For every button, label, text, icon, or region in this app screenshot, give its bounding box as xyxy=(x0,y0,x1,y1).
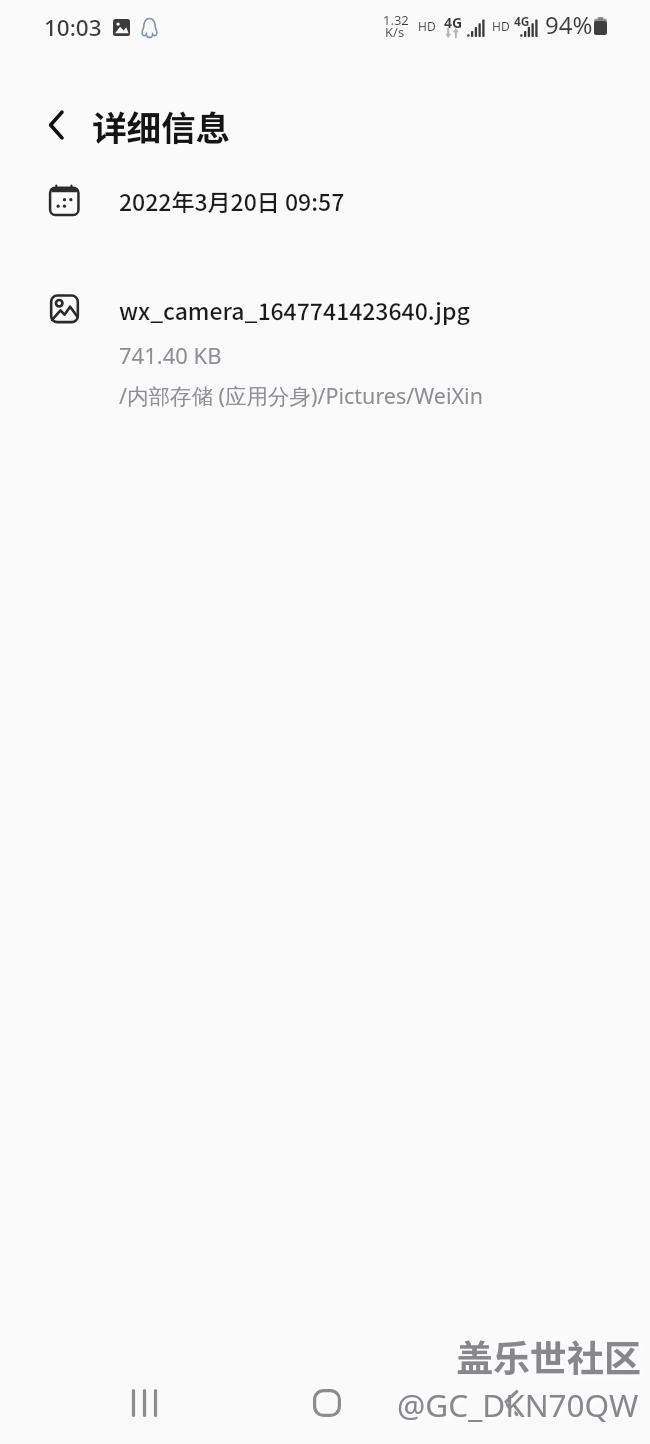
staticText: 2022年3月20日 09:57 xyxy=(119,184,345,217)
staticText: 94% xyxy=(545,8,593,41)
staticText: 盖乐世社区 xyxy=(459,1332,644,1386)
staticText: 4G xyxy=(514,13,530,29)
button[interactable]: Back xyxy=(481,1373,541,1433)
staticText: 详细信息 xyxy=(92,101,231,151)
button[interactable]: 2022年3月20日 09:57 xyxy=(0,176,650,224)
staticText: @GC_DKN70QW xyxy=(397,1383,639,1426)
staticText: 盖乐世社区 xyxy=(456,1329,641,1383)
staticText: wx_camera_1647741423640.jpg xyxy=(119,293,470,326)
staticText: HD xyxy=(492,18,510,34)
button[interactable]: wx_camera_1647741423640.jpg xyxy=(0,293,650,410)
staticText: 741.40 KB xyxy=(119,340,222,370)
staticText: 4G xyxy=(444,13,463,32)
staticText: 10:03 xyxy=(44,12,102,43)
button[interactable]: Back xyxy=(32,101,80,149)
staticText: @GC_DKN70QW xyxy=(400,1386,642,1429)
staticText: 1.32 xyxy=(383,11,409,29)
staticText: HD xyxy=(418,18,436,34)
button[interactable]: Recent apps xyxy=(114,1373,174,1433)
staticText: /内部存储 (应用分身)/Pictures/WeiXin xyxy=(119,381,483,410)
button[interactable]: Home xyxy=(297,1373,357,1433)
staticText: K/s xyxy=(385,23,405,41)
